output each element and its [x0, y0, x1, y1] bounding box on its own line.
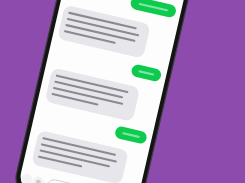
button[interactable]: Messages conversation on phone — [0, 0, 245, 183]
